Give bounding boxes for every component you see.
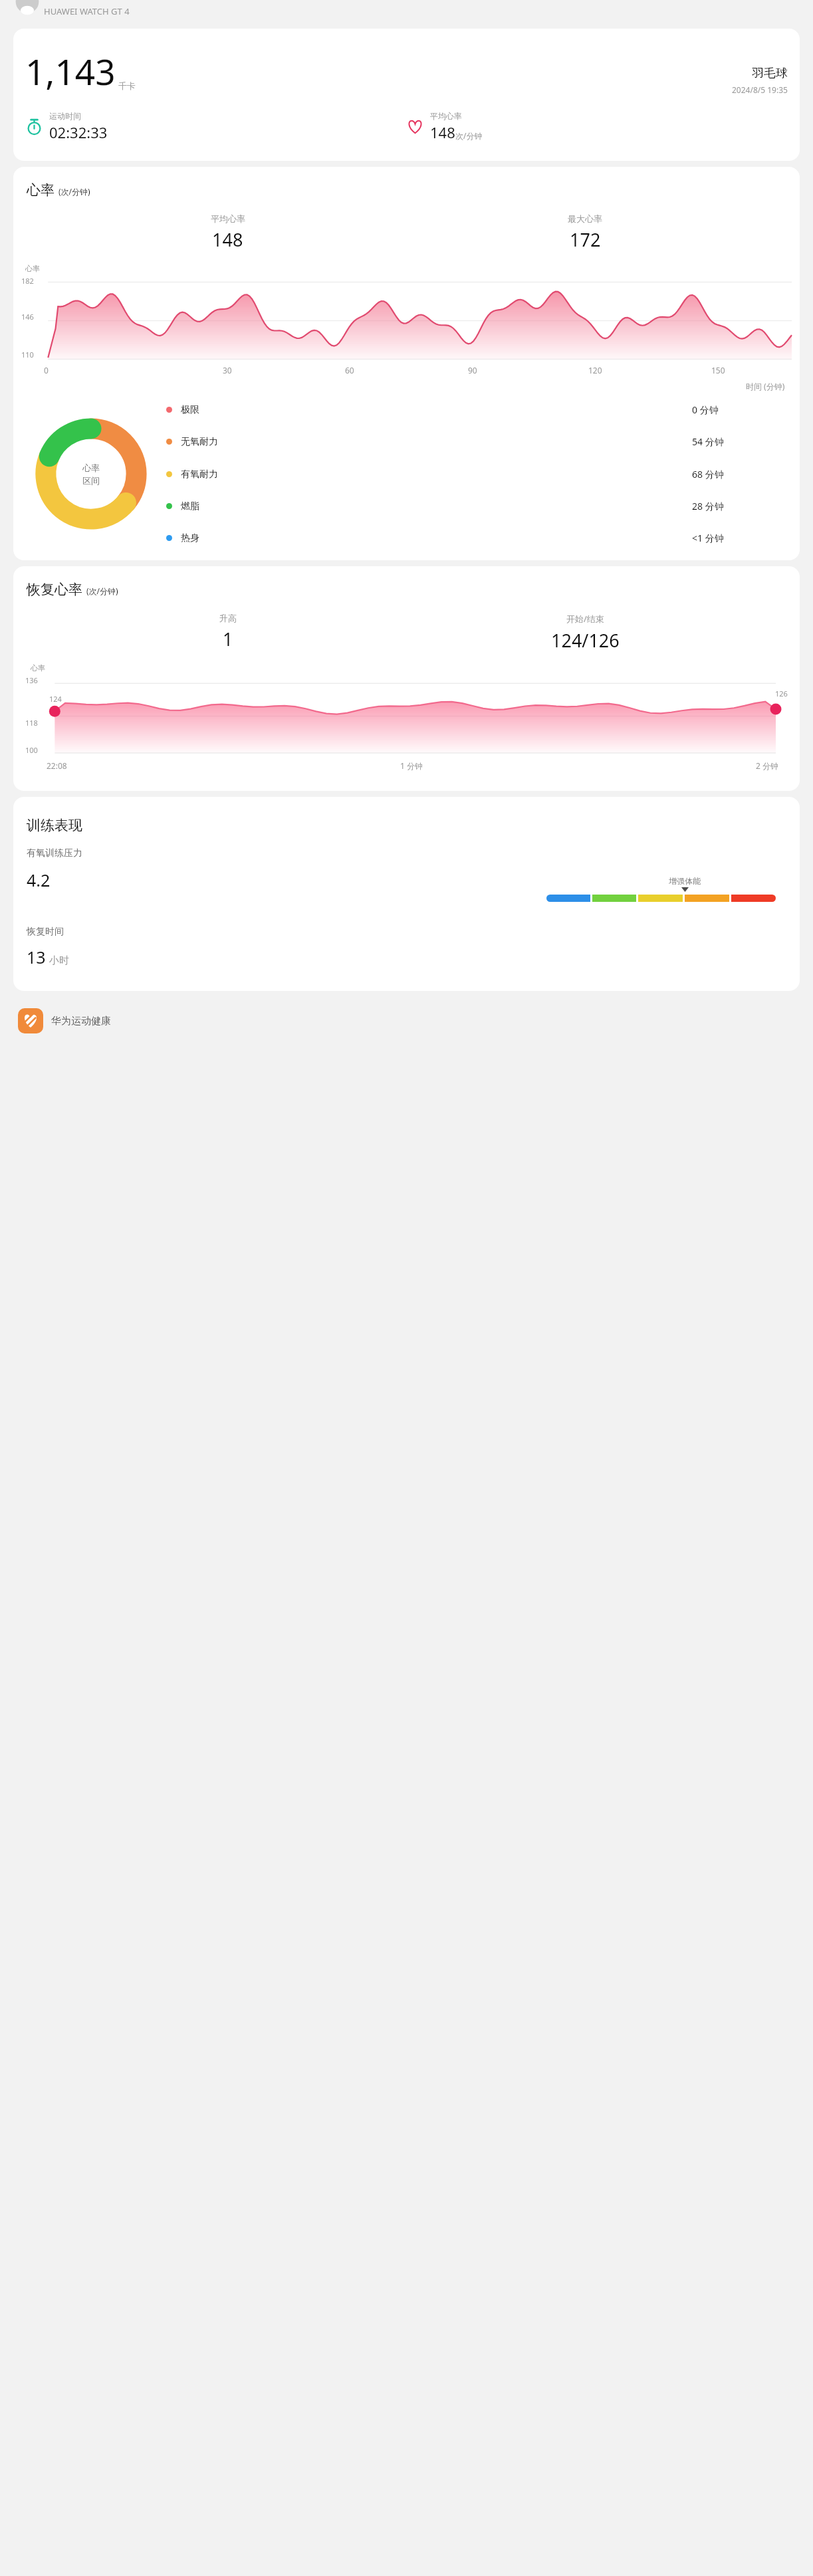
staticText: 恢复心率 [27,581,82,598]
staticText: 羽毛球 [752,66,788,81]
staticText: 02:32:33 [49,122,108,142]
staticText: 172 [570,227,601,252]
staticText: 110 [21,350,34,360]
staticText: 心率 [31,663,45,673]
staticText: 126 [775,689,788,698]
staticText: 1 [223,627,233,651]
staticText: 118 [25,718,38,728]
staticText: 次/分钟 [455,130,483,141]
other: Huawei Health [18,1008,43,1033]
staticText: 1,143 [25,47,116,95]
staticText: 68 分钟 [692,468,724,481]
staticText: 燃脂 [181,500,199,512]
staticText: 增强体能 [669,876,701,886]
staticText: 124 [49,694,62,704]
staticText: 心率 [27,181,55,199]
staticText: 热身 [181,532,199,544]
staticText: 心率 [82,463,100,473]
button[interactable]: Huawei Health [0,1006,813,1047]
staticText: 千卡 [118,80,136,91]
staticText: 有氧耐力 [181,469,218,481]
staticText: 2024/8/5 19:35 [732,84,788,95]
staticText: 有氧训练压力 [27,847,82,859]
staticText: 1 分钟 [400,760,423,771]
staticText: 恢复时间 [27,926,64,938]
staticText: 146 [21,312,34,322]
staticText: 区间 [82,475,100,486]
staticText: 100 [25,745,38,755]
staticText: 90 [468,365,477,376]
staticText: 运动时间 [49,111,81,121]
staticText: 2 分钟 [756,760,778,771]
staticText: 最大心率 [568,213,602,224]
staticText: 136 [25,675,38,685]
staticText: 120 [588,365,602,376]
staticText: 28 分钟 [692,500,724,512]
staticText: 4.2 [27,869,51,891]
staticText: 182 [21,276,34,286]
staticText: 华为运动健康 [51,1015,111,1027]
staticText: 148 [430,122,455,142]
staticText: 无氧耐力 [181,436,218,448]
staticText: 0 分钟 [692,403,719,416]
staticText: 平均心率 [430,111,462,121]
staticText: 小时 [49,954,69,967]
staticText: 时间 (分钟) [746,381,785,391]
staticText: 150 [711,365,725,376]
staticText: (次/分钟) [58,186,90,197]
staticText: 54 分钟 [692,435,724,448]
staticText: 22:08 [47,760,67,771]
staticText: 124/126 [551,628,620,653]
staticText: HUAWEI WATCH GT 4 [44,5,130,17]
staticText: 60 [345,365,354,376]
staticText: (次/分钟) [86,586,118,596]
staticText: 30 [223,365,232,376]
staticText: 开始/结束 [566,613,604,625]
staticText: 平均心率 [211,213,245,224]
staticText: 升高 [219,613,237,623]
staticText: 0 [44,365,49,376]
staticText: <1 分钟 [692,532,724,544]
staticText: 极限 [181,404,199,416]
staticText: 13 [27,946,46,968]
staticText: 心率 [25,264,40,273]
staticText: 训练表现 [27,817,82,834]
staticText: 148 [212,227,243,252]
